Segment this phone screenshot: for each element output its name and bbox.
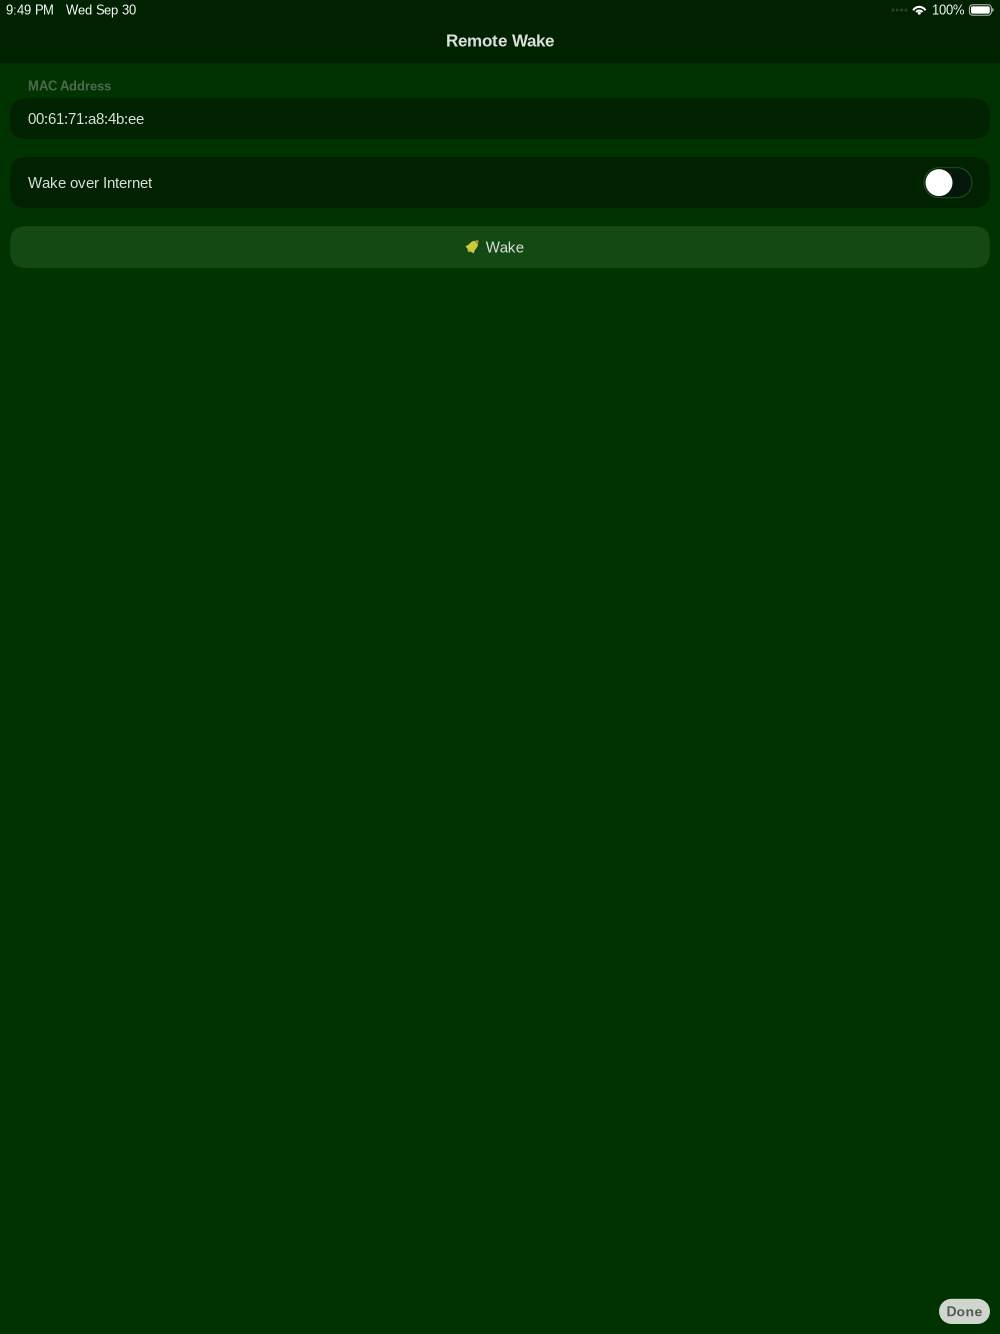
button[interactable]: Done xyxy=(939,1299,990,1324)
button[interactable]: Wake over Internet xyxy=(0,157,1000,208)
button[interactable]: Wake xyxy=(0,226,1000,268)
staticText: Wed Sep 30 xyxy=(66,3,136,17)
staticText: Wake xyxy=(486,239,524,255)
staticText: MAC Address xyxy=(28,79,111,93)
button[interactable]: 00:61:71:a8:4b:ee xyxy=(0,98,1000,139)
staticText: Wake over Internet xyxy=(28,174,152,191)
staticText: 9:49 PM xyxy=(6,3,54,17)
staticText: 100% xyxy=(932,3,965,17)
staticText: Remote Wake xyxy=(446,31,554,50)
staticText: 00:61:71:a8:4b:ee xyxy=(28,110,144,127)
staticText: Done xyxy=(946,1304,982,1319)
